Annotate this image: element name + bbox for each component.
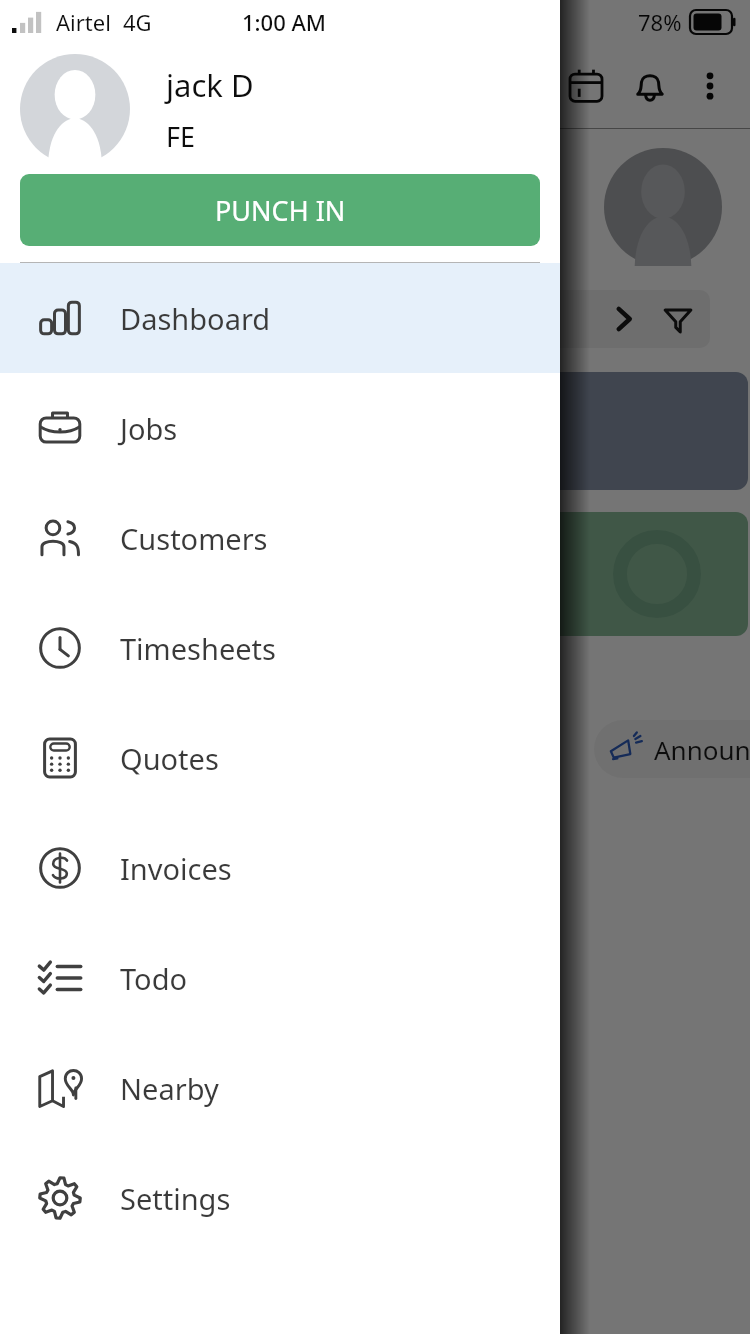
button[interactable]: PUNCH IN xyxy=(20,174,540,246)
staticText: 4G xyxy=(123,7,152,37)
staticText: Quotes xyxy=(120,739,219,778)
button[interactable] xyxy=(538,372,748,490)
staticText: Settings xyxy=(120,1179,231,1218)
staticText: PUNCH IN xyxy=(215,192,346,229)
staticText: jack D xyxy=(166,64,254,106)
button[interactable]: Invoices xyxy=(0,813,560,923)
staticText: Timesheets xyxy=(120,629,276,668)
button[interactable]: Notifications xyxy=(618,54,682,118)
staticText: Jobs xyxy=(120,409,178,448)
button[interactable]: Customers xyxy=(0,483,560,593)
button[interactable]: Calendar xyxy=(554,54,618,118)
button[interactable]: Quotes xyxy=(0,703,560,813)
button[interactable]: Today xyxy=(470,290,710,348)
staticText: Airtel xyxy=(56,7,111,37)
button[interactable]: Settings xyxy=(0,1143,560,1253)
button[interactable]: More options xyxy=(682,58,738,114)
button[interactable] xyxy=(538,512,748,636)
staticText: Invoices xyxy=(120,849,232,888)
staticText: Todo xyxy=(120,959,188,998)
button[interactable]: Jobs xyxy=(0,373,560,483)
staticText: FE xyxy=(166,118,196,155)
button[interactable]: Announ xyxy=(594,720,750,778)
staticText: 78% xyxy=(638,7,682,37)
staticText: 1:00 AM xyxy=(242,7,327,37)
staticText: Announ xyxy=(654,732,750,767)
button[interactable]: Todo xyxy=(0,923,560,1033)
button[interactable]: Dashboard xyxy=(0,263,560,373)
staticText: Dashboard xyxy=(120,299,271,338)
button[interactable]: Timesheets xyxy=(0,593,560,703)
button[interactable]: Nearby xyxy=(0,1033,560,1143)
staticText: Customers xyxy=(120,519,268,558)
staticText: Nearby xyxy=(120,1069,219,1108)
